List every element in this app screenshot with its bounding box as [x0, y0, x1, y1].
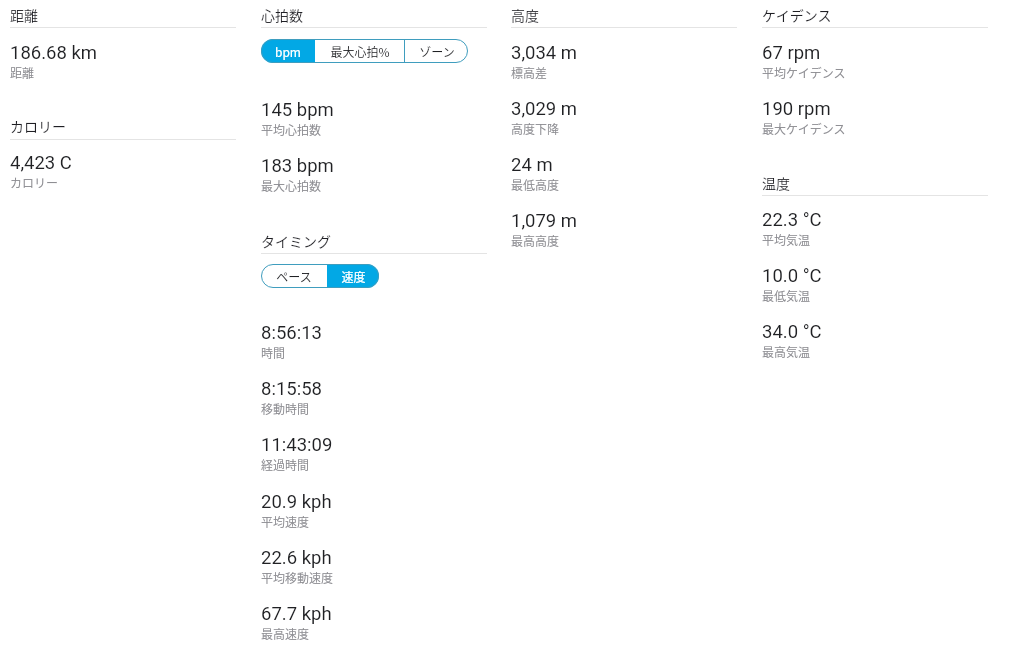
staticText: 190 rpm [762, 98, 831, 120]
staticText: 距離 [10, 5, 38, 25]
staticText: 高度 [511, 5, 539, 25]
staticText: 最低気温 [762, 287, 811, 304]
button[interactable]: 最大心拍% [316, 39, 404, 63]
staticText: 平均移動速度 [261, 569, 334, 586]
staticText: 温度 [762, 173, 790, 193]
staticText: 心拍数 [261, 5, 303, 25]
staticText: 標高差 [511, 64, 548, 81]
staticText: カロリー [10, 174, 59, 191]
staticText: 最大心拍% [330, 43, 390, 60]
staticText: 最高高度 [511, 232, 560, 249]
staticText: 1,079 m [511, 210, 578, 232]
staticText: 67 rpm [762, 42, 821, 64]
staticText: 移動時間 [261, 400, 310, 417]
staticText: 34.0 °C [762, 321, 822, 343]
staticText: 4,423 C [10, 152, 72, 174]
staticText: 183 bpm [261, 155, 334, 177]
button[interactable]: ゾーン [405, 39, 468, 63]
staticText: 距離 [10, 64, 35, 81]
staticText: 22.3 °C [762, 209, 822, 231]
staticText: 8:15:58 [261, 378, 322, 400]
staticText: 24 m [511, 154, 553, 176]
staticText: 11:43:09 [261, 434, 333, 456]
staticText: ペース [276, 268, 312, 285]
staticText: 時間 [261, 344, 286, 361]
staticText: 145 bpm [261, 99, 334, 121]
staticText: 平均ケイデンス [762, 64, 846, 81]
staticText: 186.68 km [10, 42, 98, 64]
staticText: 3,034 m [511, 42, 578, 64]
staticText: カロリー [10, 116, 66, 136]
staticText: 平均気温 [762, 231, 811, 248]
staticText: 最高気温 [762, 343, 811, 360]
staticText: 経過時間 [261, 456, 310, 473]
staticText: 67.7 kph [261, 603, 332, 625]
staticText: 最大心拍数 [261, 177, 322, 194]
staticText: 平均心拍数 [261, 121, 322, 138]
staticText: 20.9 kph [261, 491, 332, 513]
staticText: 平均速度 [261, 513, 310, 530]
button[interactable]: bpm [261, 39, 315, 63]
button[interactable]: 速度 [327, 264, 379, 288]
staticText: 最高速度 [261, 625, 310, 642]
staticText: ゾーン [419, 43, 455, 60]
staticText: タイミング [261, 231, 331, 251]
staticText: 最大ケイデンス [762, 120, 846, 137]
staticText: ケイデンス [762, 5, 832, 25]
staticText: 10.0 °C [762, 265, 822, 287]
staticText: bpm [275, 43, 301, 60]
staticText: 最低高度 [511, 176, 560, 193]
button[interactable]: ペース [261, 264, 326, 288]
staticText: 22.6 kph [261, 547, 332, 569]
staticText: 速度 [341, 268, 366, 285]
staticText: 8:56:13 [261, 322, 322, 344]
staticText: 3,029 m [511, 98, 578, 120]
staticText: 高度下降 [511, 120, 560, 137]
